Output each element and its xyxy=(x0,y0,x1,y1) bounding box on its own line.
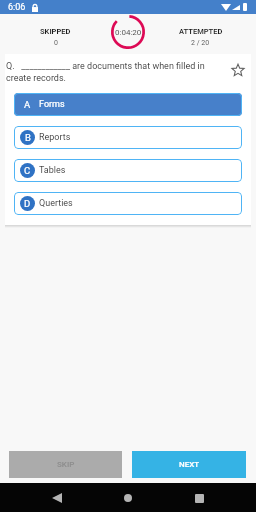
staticText: Querties xyxy=(39,198,73,209)
staticText: NEXT xyxy=(179,460,200,469)
button[interactable]: D xyxy=(14,192,242,215)
staticText: 0:04:20 xyxy=(115,28,142,37)
button[interactable]: A xyxy=(14,93,242,116)
staticText: Tables xyxy=(39,165,66,176)
button[interactable]: Home xyxy=(118,488,138,508)
staticText: SKIPPED xyxy=(40,27,71,36)
button[interactable]: Back xyxy=(47,488,67,508)
staticText: D xyxy=(24,198,31,209)
button[interactable]: Bookmark xyxy=(229,61,247,79)
staticText: 0 xyxy=(54,39,58,47)
staticText: Q. ____________ are documents that when … xyxy=(6,61,223,83)
staticText: 2 / 20 xyxy=(191,39,210,47)
button[interactable]: Recent apps xyxy=(189,488,209,508)
staticText: Reports xyxy=(39,132,71,143)
staticText: SKIP xyxy=(57,460,75,469)
staticText: 6:06 xyxy=(8,2,26,13)
staticText: A xyxy=(24,99,31,110)
button[interactable]: NEXT xyxy=(132,451,246,478)
staticText: B xyxy=(25,132,31,143)
staticText: ATTEMPTED xyxy=(179,27,223,36)
staticText: C xyxy=(24,165,31,176)
button[interactable]: B xyxy=(14,126,242,149)
staticText: Forms xyxy=(39,99,65,110)
button[interactable]: C xyxy=(14,159,242,182)
